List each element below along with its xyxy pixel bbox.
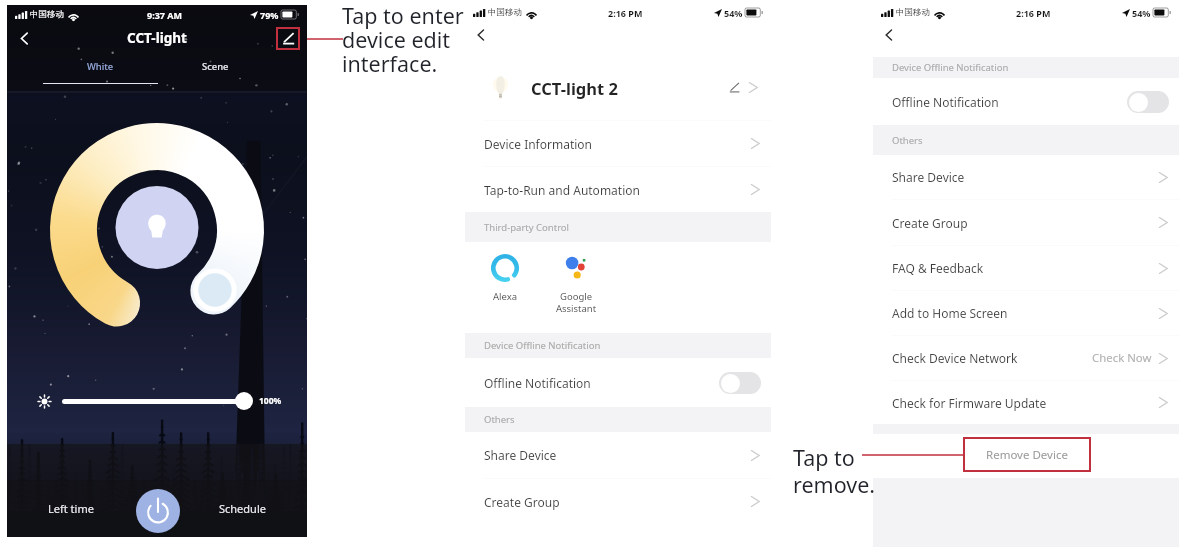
staticText: Share Device xyxy=(484,447,557,463)
button[interactable]: Power xyxy=(136,489,180,533)
staticText: Scene xyxy=(202,60,229,73)
staticText: Others xyxy=(892,134,923,147)
button[interactable]: FAQ & Feedback xyxy=(873,246,1179,290)
button[interactable]: Schedule xyxy=(192,480,292,537)
button[interactable]: CCT-light 2 xyxy=(465,55,771,120)
staticText: 54% xyxy=(1132,7,1151,19)
button[interactable]: Offline Notification xyxy=(873,78,1179,125)
staticText: CCT-light 2 xyxy=(531,77,618,99)
button[interactable]: Device Information xyxy=(465,121,771,166)
button[interactable]: Add to Home Screen xyxy=(873,291,1179,335)
button[interactable]: White xyxy=(43,52,158,80)
staticText: Schedule xyxy=(219,501,266,516)
staticText: Offline Notification xyxy=(484,375,591,391)
staticText: Tap-to-Run and Automation xyxy=(484,182,640,198)
staticText: Device Information xyxy=(484,136,593,152)
staticText: Create Group xyxy=(892,215,968,231)
staticText: 中国移动 xyxy=(30,9,64,20)
staticText: Check Now xyxy=(1092,350,1152,366)
staticText: CCT-light xyxy=(127,29,187,47)
button[interactable]: Share Device xyxy=(465,432,771,478)
staticText: Device Offline Notification xyxy=(892,61,1009,74)
button[interactable]: Check for Firmware Update xyxy=(873,381,1179,424)
button[interactable]: Offline Notification xyxy=(465,358,771,407)
staticText: 2:16 PM xyxy=(1016,7,1051,19)
staticText: 54% xyxy=(724,7,743,19)
staticText: 9:37 AM xyxy=(147,9,183,21)
staticText: Left time xyxy=(48,501,94,516)
staticText: Others xyxy=(484,413,515,426)
staticText: Share Device xyxy=(892,169,965,185)
button[interactable]: Scene xyxy=(158,52,273,80)
staticText: Remove Device xyxy=(986,447,1068,463)
button[interactable]: Remove Device xyxy=(963,437,1091,472)
staticText: 中国移动 xyxy=(488,7,522,18)
staticText: White xyxy=(87,60,114,73)
button[interactable]: Share Device xyxy=(873,155,1179,199)
staticText: Alexa xyxy=(478,290,532,303)
button[interactable]: Google Assistant xyxy=(549,242,603,314)
button[interactable]: Left time xyxy=(21,480,121,537)
button[interactable]: Tap-to-Run and Automation xyxy=(465,167,771,212)
staticText: Offline Notification xyxy=(892,94,999,110)
staticText: Third-party Control xyxy=(484,221,570,234)
staticText: Check Device Network xyxy=(892,350,1018,366)
button[interactable]: Back xyxy=(879,25,899,45)
button[interactable]: Back xyxy=(471,25,491,45)
staticText: Tap to enter device edit interface. xyxy=(342,1,492,78)
staticText: Tap to remove. xyxy=(793,443,903,499)
button[interactable]: Check Device Network xyxy=(873,336,1179,380)
staticText: FAQ & Feedback xyxy=(892,260,984,276)
staticText: Add to Home Screen xyxy=(892,305,1008,321)
staticText: Device Offline Notification xyxy=(484,339,601,352)
staticText: Check for Firmware Update xyxy=(892,395,1047,411)
button[interactable]: Alexa xyxy=(478,242,532,303)
button[interactable]: Create Group xyxy=(465,479,771,524)
button[interactable]: Back xyxy=(13,27,35,49)
staticText: 中国移动 xyxy=(896,7,930,18)
staticText: Google Assistant xyxy=(549,290,603,314)
button[interactable]: Edit device xyxy=(276,27,300,50)
staticText: 2:16 PM xyxy=(608,7,643,19)
button[interactable]: Create Group xyxy=(873,200,1179,245)
staticText: 100% xyxy=(259,395,282,407)
staticText: Create Group xyxy=(484,494,560,510)
staticText: 79% xyxy=(260,9,279,21)
button[interactable] xyxy=(62,392,253,410)
